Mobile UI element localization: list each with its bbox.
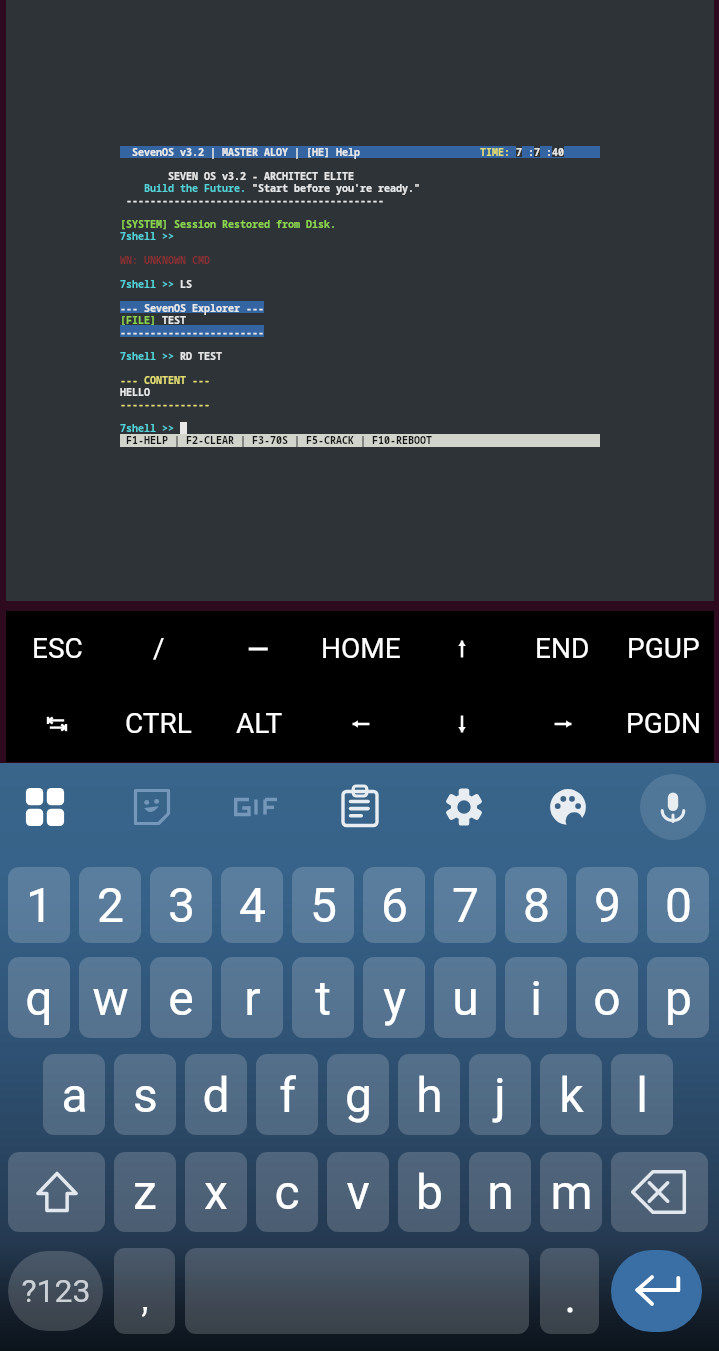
staticText: n — [487, 1164, 514, 1220]
button[interactable]: f — [256, 1054, 318, 1135]
staticText: 4 — [239, 877, 266, 933]
staticText: s — [133, 1067, 158, 1123]
button[interactable]: k — [540, 1054, 602, 1135]
staticText: g — [345, 1067, 372, 1123]
button[interactable]: y — [363, 957, 425, 1038]
staticText: END — [535, 632, 590, 665]
staticText: f — [279, 1067, 296, 1123]
button[interactable]: Tab — [6, 686, 108, 761]
button[interactable]: g — [327, 1054, 389, 1135]
button[interactable]: 9 — [576, 867, 638, 943]
staticText: z — [133, 1164, 157, 1220]
staticText: 2 — [97, 877, 124, 933]
button[interactable]: 8 — [505, 867, 567, 943]
button[interactable]: t — [292, 957, 354, 1038]
staticText: v — [346, 1164, 370, 1220]
button[interactable]: 6 — [363, 867, 425, 943]
button[interactable]: x — [185, 1152, 247, 1232]
button[interactable]: Space — [185, 1248, 529, 1334]
button[interactable]: 7 — [434, 867, 496, 943]
button[interactable]: q — [8, 957, 70, 1038]
button[interactable]: u — [434, 957, 496, 1038]
staticText: b — [416, 1164, 443, 1220]
button[interactable]: Shift — [8, 1152, 105, 1232]
button[interactable]: 3 — [150, 867, 212, 943]
button[interactable]: 2 — [79, 867, 141, 943]
button[interactable]: GIF — [228, 779, 284, 835]
button[interactable]: Apps — [17, 779, 73, 835]
staticText: 1 — [26, 877, 53, 933]
button[interactable]: Clipboard — [332, 779, 388, 835]
button[interactable]: Up — [411, 611, 512, 686]
button[interactable]: s — [114, 1054, 176, 1135]
button[interactable]: Right — [512, 686, 613, 761]
staticText: a — [61, 1067, 88, 1123]
button[interactable]: Backspace — [611, 1152, 708, 1232]
staticText: o — [593, 970, 621, 1026]
button[interactable]: END — [512, 611, 613, 686]
staticText: LS — [180, 277, 192, 291]
button[interactable]: 4 — [221, 867, 283, 943]
button[interactable]: n — [469, 1152, 531, 1232]
button[interactable]: z — [114, 1152, 176, 1232]
staticText: y — [383, 970, 406, 1026]
button[interactable]: Enter — [611, 1250, 702, 1332]
button[interactable]: 1 — [8, 867, 70, 943]
button[interactable]: Themes — [540, 779, 596, 835]
staticText: t — [315, 970, 331, 1026]
staticText: e — [168, 970, 194, 1026]
button[interactable]: HOME — [310, 611, 411, 686]
button[interactable]: CTRL — [108, 686, 209, 761]
button[interactable]: Down — [411, 686, 512, 761]
button[interactable]: j — [469, 1054, 531, 1135]
staticText: 7shell >> — [120, 277, 174, 291]
button[interactable]: PGUP — [613, 611, 714, 686]
staticText: 3 — [168, 877, 195, 933]
staticText: r — [244, 970, 261, 1026]
staticText: h — [416, 1067, 443, 1123]
button[interactable]: PGDN — [613, 686, 714, 761]
button[interactable]: e — [150, 957, 212, 1038]
button[interactable]: Comma — [114, 1248, 175, 1334]
staticText: SEVEN OS v3.2 - ARCHITECT ELITE — [168, 169, 354, 183]
button[interactable]: b — [398, 1152, 460, 1232]
staticText: TEST — [162, 313, 186, 327]
button[interactable]: ALT — [209, 686, 310, 761]
button[interactable]: Period — [540, 1248, 599, 1334]
staticText: u — [452, 970, 479, 1026]
button[interactable]: / — [108, 611, 209, 686]
staticText: : — [528, 145, 534, 159]
button[interactable]: p — [647, 957, 709, 1038]
button[interactable]: Voice input — [640, 774, 706, 840]
button[interactable]: c — [256, 1152, 318, 1232]
staticText: l — [636, 1067, 648, 1123]
button[interactable]: w — [79, 957, 141, 1038]
staticText: 7shell >> — [120, 349, 174, 363]
button[interactable]: 0 — [647, 867, 709, 943]
button[interactable]: v — [327, 1152, 389, 1232]
button[interactable]: Left — [310, 686, 411, 761]
button[interactable]: ?123 — [8, 1251, 103, 1331]
staticText: 9 — [594, 877, 621, 933]
staticText: 6 — [381, 877, 408, 933]
staticText: [FILE] — [120, 313, 156, 327]
button[interactable]: m — [540, 1152, 602, 1232]
button[interactable]: Settings — [436, 779, 492, 835]
button[interactable]: d — [185, 1054, 247, 1135]
button[interactable]: Dash — [209, 611, 310, 686]
button[interactable]: i — [505, 957, 567, 1038]
button[interactable]: Stickers — [124, 779, 180, 835]
button[interactable]: o — [576, 957, 638, 1038]
staticText: / — [153, 632, 165, 665]
button[interactable]: h — [398, 1054, 460, 1135]
staticText: 8 — [523, 877, 550, 933]
staticText: "Start before you're ready." — [252, 181, 420, 195]
button[interactable]: 5 — [292, 867, 354, 943]
button[interactable]: r — [221, 957, 283, 1038]
button[interactable]: a — [43, 1054, 105, 1135]
staticText: 7 — [452, 877, 479, 933]
button[interactable]: l — [611, 1054, 673, 1135]
staticText: k — [559, 1067, 584, 1123]
staticText: : — [546, 145, 552, 159]
button[interactable]: ESC — [6, 611, 108, 686]
